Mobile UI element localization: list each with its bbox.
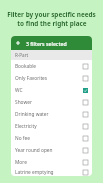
staticText: No fee (15, 135, 30, 142)
other: Not selected (83, 160, 88, 165)
other: Add filter (15, 40, 21, 46)
button[interactable]: More (11, 156, 92, 168)
button[interactable]: Year round open (11, 144, 92, 156)
staticText: Electricity (15, 123, 37, 130)
other: Not selected (83, 136, 88, 141)
button[interactable]: Latrine emptying (11, 168, 92, 176)
staticText: Filter by your specific needs (7, 10, 96, 19)
staticText: Only Favorites (15, 75, 48, 82)
button[interactable]: Only Favorites (11, 72, 92, 84)
staticText: to find the right place (17, 19, 87, 28)
staticText: More (15, 159, 27, 166)
button[interactable]: WC (11, 84, 92, 96)
staticText: R-Part (15, 52, 29, 58)
button[interactable]: Shower (11, 96, 92, 108)
button[interactable]: Add filter (11, 36, 92, 50)
staticText: Latrine emptying (15, 169, 54, 176)
staticText: Year round open (15, 147, 53, 154)
other: Not selected (83, 76, 88, 81)
other: Not selected (83, 170, 88, 175)
staticText: WC (15, 87, 23, 94)
button[interactable]: No fee (11, 132, 92, 144)
staticText: Bookable (15, 63, 37, 70)
other: Not selected (83, 148, 88, 153)
button[interactable]: Bookable (11, 60, 92, 72)
other: Not selected (83, 100, 88, 105)
staticText: Drinking water (15, 111, 49, 118)
other: Selected (83, 88, 88, 93)
button[interactable]: Electricity (11, 120, 92, 132)
staticText: Shower (15, 99, 32, 106)
other: Not selected (83, 112, 88, 117)
other: Not selected (83, 64, 88, 69)
staticText: 3 filters selected (26, 40, 67, 47)
button[interactable]: Drinking water (11, 108, 92, 120)
other: Not selected (83, 124, 88, 129)
